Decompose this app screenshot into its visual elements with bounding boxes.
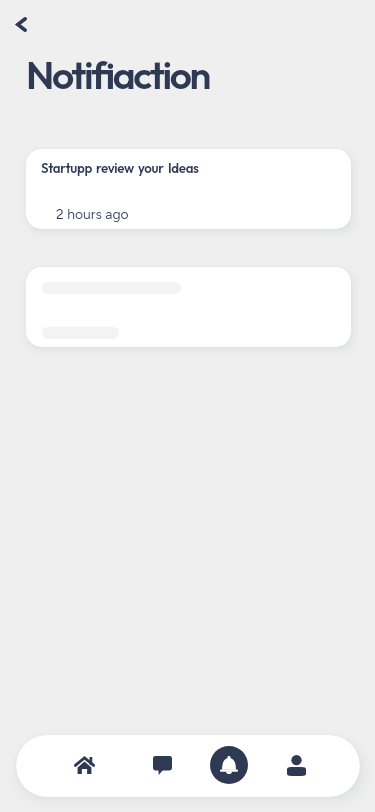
button[interactable]: Home — [65, 746, 103, 784]
button[interactable]: Profile — [277, 746, 315, 784]
staticText: review — [96, 160, 134, 177]
staticText: Notifiaction — [26, 50, 209, 99]
staticText: 2 hours ago — [56, 206, 129, 223]
button[interactable]: Startupp — [26, 149, 351, 229]
button[interactable]: Messages — [143, 746, 181, 784]
button[interactable]: Back — [4, 7, 38, 41]
staticText: Startupp — [41, 160, 92, 177]
staticText: Ideas — [168, 160, 199, 177]
staticText: your — [138, 160, 164, 177]
button[interactable]: Notifications — [210, 746, 248, 784]
button[interactable] — [26, 267, 351, 347]
